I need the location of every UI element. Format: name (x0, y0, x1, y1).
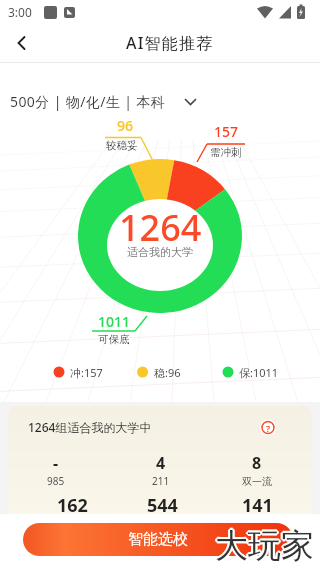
button[interactable] (48, 360, 288, 384)
staticText: 162 (57, 493, 88, 518)
staticText: 可保底 (98, 333, 130, 346)
staticText: 智能选校 (128, 530, 188, 549)
staticText: 985 (47, 474, 65, 488)
staticText: 544 (147, 493, 178, 518)
staticText: 8 (252, 452, 262, 474)
staticText: 141 (242, 493, 273, 518)
staticText: 适合我的大学 (127, 245, 193, 259)
staticText: 大玩家 (216, 526, 315, 566)
staticText: 大玩家 (215, 525, 314, 565)
staticText: AI智能推荐 (126, 32, 214, 54)
staticText: 冲:157 (70, 365, 103, 380)
staticText: ? (266, 422, 271, 434)
staticText: 大玩家 (213, 525, 312, 565)
staticText: 大玩家 (215, 527, 314, 567)
staticText: 1011 (98, 312, 131, 331)
staticText: 大玩家 (216, 524, 315, 564)
staticText: - (53, 452, 59, 474)
staticText: 大玩家 (214, 524, 313, 564)
staticText: 1264 (119, 203, 202, 243)
button[interactable]: 智能选校 (23, 523, 293, 556)
staticText: 较稳妥 (106, 139, 138, 152)
staticText: 96 (117, 116, 134, 135)
staticText: 500分 | 物/化/生 | 本科 (10, 92, 166, 111)
staticText: 需冲刺 (210, 146, 242, 159)
staticText: 1264组适合我的大学中 (28, 419, 152, 435)
button[interactable] (259, 419, 277, 437)
button[interactable] (0, 24, 56, 62)
staticText: 3:00 (8, 4, 32, 20)
staticText: 稳:96 (154, 365, 181, 380)
staticText: 大玩家 (217, 525, 316, 565)
staticText: 保:1011 (239, 365, 279, 380)
staticText: 大玩家 (214, 526, 313, 566)
button[interactable] (0, 86, 210, 116)
staticText: 4 (156, 452, 166, 474)
staticText: 157 (214, 122, 239, 141)
staticText: 211 (152, 474, 170, 488)
staticText: 双一流 (242, 475, 272, 488)
staticText: 大玩家 (215, 523, 314, 563)
